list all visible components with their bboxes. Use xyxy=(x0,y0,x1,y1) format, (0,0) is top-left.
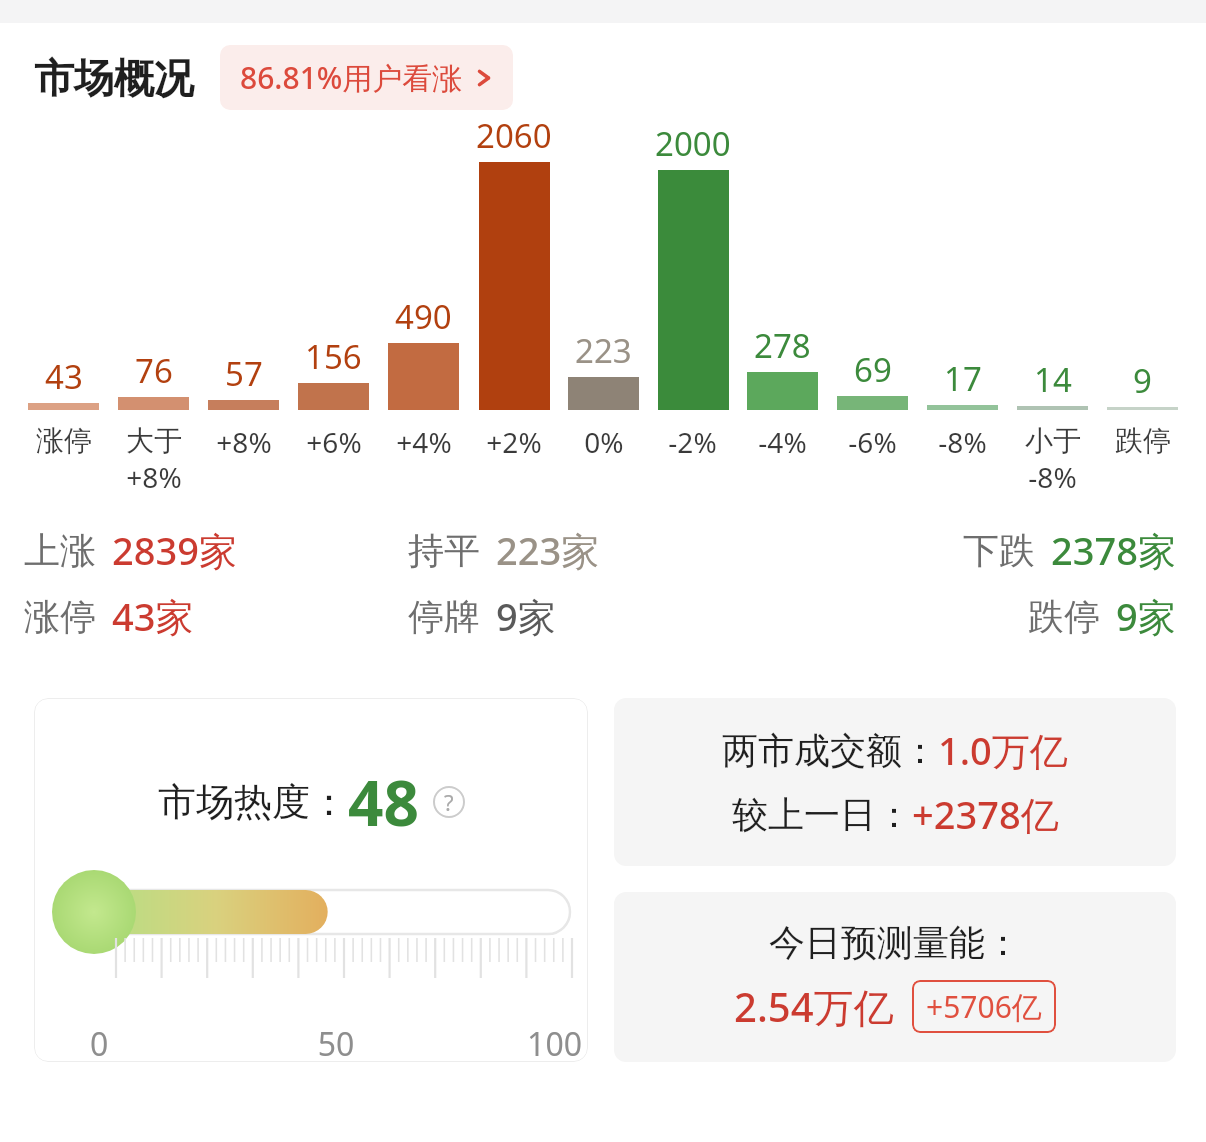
staticText: +2% xyxy=(486,423,542,461)
staticText: 1.0万亿 xyxy=(938,724,1068,776)
button[interactable]: 两市成交额： xyxy=(614,698,1176,866)
staticText: +4% xyxy=(396,423,452,461)
staticText: 43 xyxy=(45,354,83,399)
staticText: 停牌 xyxy=(408,594,480,639)
staticText: 2839家 xyxy=(112,524,237,576)
staticText: 涨停 xyxy=(24,594,96,639)
staticText: 76 xyxy=(135,348,173,393)
staticText: +2378亿 xyxy=(912,788,1059,840)
staticText: 9家 xyxy=(496,590,556,642)
staticText: 156 xyxy=(305,334,362,379)
staticText: +8% xyxy=(126,458,182,496)
staticText: 43家 xyxy=(112,590,194,642)
staticText: +5706亿 xyxy=(926,986,1042,1027)
staticText: 两市成交额： xyxy=(722,728,938,773)
staticText: 大于 xyxy=(126,423,182,458)
staticText: 2378家 xyxy=(1051,524,1176,576)
staticText: 较上一日： xyxy=(732,792,912,837)
button[interactable]: 市场热度： xyxy=(34,698,588,1062)
staticText: 2.54万亿 xyxy=(734,979,894,1034)
staticText: 市场概况 xyxy=(34,53,194,103)
staticText: 涨停 xyxy=(36,423,92,458)
staticText: 跌停 xyxy=(1115,423,1171,458)
button[interactable]: 今日预测量能： xyxy=(614,892,1176,1062)
staticText: -4% xyxy=(758,423,807,461)
staticText: 278 xyxy=(754,323,811,368)
staticText: 100 xyxy=(418,1022,582,1062)
staticText: 490 xyxy=(395,294,452,339)
staticText: 9 xyxy=(1133,358,1152,403)
staticText: 50 xyxy=(254,1022,418,1062)
button[interactable]: 帮助说明 xyxy=(433,786,465,818)
staticText: 市场热度： xyxy=(158,778,348,826)
staticText: 48 xyxy=(348,760,419,844)
staticText: -6% xyxy=(848,423,897,461)
staticText: 223家 xyxy=(496,524,600,576)
staticText: 17 xyxy=(944,356,982,401)
staticText: 持平 xyxy=(408,528,480,573)
staticText: 223 xyxy=(575,328,632,373)
staticText: 2000 xyxy=(655,121,731,166)
staticText: 69 xyxy=(854,347,892,392)
button[interactable]: 86.81%用户看涨 xyxy=(220,45,513,110)
staticText: 跌停 xyxy=(1028,594,1100,639)
staticText: ? xyxy=(444,787,454,817)
staticText: 上涨 xyxy=(24,528,96,573)
staticText: 57 xyxy=(225,351,263,396)
staticText: -8% xyxy=(938,423,987,461)
staticText: 下跌 xyxy=(963,528,1035,573)
staticText: 2060 xyxy=(476,113,552,158)
staticText: 0 xyxy=(90,1022,254,1062)
staticText: -8% xyxy=(1028,458,1077,496)
staticText: 0% xyxy=(584,423,624,461)
staticText: +6% xyxy=(306,423,362,461)
staticText: 今日预测量能： xyxy=(769,920,1021,965)
staticText: 14 xyxy=(1034,357,1072,402)
staticText: 小于 xyxy=(1025,423,1081,458)
staticText: 9家 xyxy=(1116,590,1176,642)
staticText: 86.81%用户看涨 xyxy=(240,57,463,98)
staticText: +8% xyxy=(216,423,272,461)
staticText: -2% xyxy=(668,423,717,461)
